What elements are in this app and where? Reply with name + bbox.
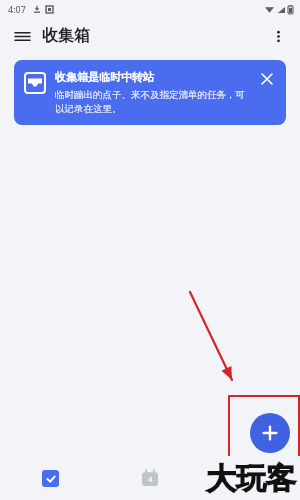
staticText: 大玩客 (206, 460, 296, 498)
button[interactable]: Profile (200, 456, 300, 500)
staticText: 临时蹦出的点子、来不及指定清单的任务，可以记录在这里。 (55, 89, 252, 115)
staticText: 4 (148, 474, 153, 484)
button[interactable]: Dismiss (258, 70, 276, 88)
button[interactable]: Calendar (100, 456, 200, 500)
button[interactable]: Add task (250, 413, 290, 453)
staticText: 收集箱是临时中转站 (55, 70, 154, 84)
staticText: 收集箱 (42, 26, 90, 46)
button[interactable]: Open navigation menu (8, 22, 36, 50)
button[interactable]: Tasks (0, 456, 100, 500)
button[interactable]: 收集箱是临时中转站 (14, 60, 286, 125)
staticText: 4:07 (8, 3, 26, 15)
button[interactable]: More options (264, 22, 292, 50)
